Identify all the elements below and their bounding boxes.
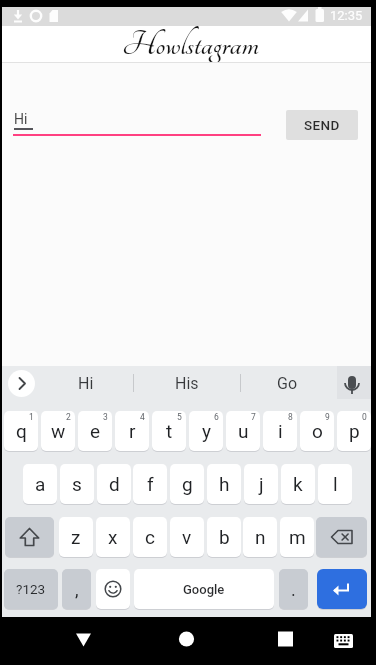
button[interactable]: His: [134, 369, 239, 397]
button[interactable]: [162, 620, 212, 660]
button[interactable]: z: [59, 517, 93, 557]
staticText: 9: [325, 412, 330, 422]
button[interactable]: o: [300, 411, 334, 451]
button[interactable]: v: [170, 517, 204, 557]
staticText: y: [202, 420, 211, 442]
staticText: 2: [66, 412, 71, 422]
button[interactable]: [5, 517, 54, 557]
staticText: 3: [103, 412, 108, 422]
staticText: 4: [140, 412, 145, 422]
button[interactable]: u: [226, 411, 260, 451]
staticText: 5: [177, 412, 182, 422]
staticText: w: [51, 420, 66, 442]
button[interactable]: w: [41, 411, 75, 451]
button[interactable]: s: [60, 464, 94, 504]
staticText: c: [145, 526, 155, 548]
staticText: ?123: [16, 581, 46, 597]
staticText: a: [35, 473, 46, 495]
button[interactable]: l: [318, 464, 352, 504]
staticText: o: [312, 420, 323, 442]
button[interactable]: f: [133, 464, 167, 504]
staticText: 8: [288, 412, 293, 422]
button[interactable]: c: [133, 517, 167, 557]
button[interactable]: b: [207, 517, 241, 557]
staticText: 7: [251, 412, 256, 422]
button[interactable]: y: [189, 411, 223, 451]
staticText: r: [129, 420, 136, 442]
button[interactable]: .: [279, 569, 308, 609]
staticText: Hi: [14, 111, 28, 127]
button[interactable]: m: [280, 517, 314, 557]
staticText: n: [255, 526, 266, 548]
button[interactable]: a: [23, 464, 57, 504]
button[interactable]: n: [243, 517, 277, 557]
staticText: s: [72, 473, 82, 495]
staticText: Google: [183, 582, 225, 597]
staticText: b: [219, 526, 230, 548]
staticText: .: [291, 579, 296, 600]
staticText: q: [16, 420, 27, 442]
staticText: Howlstagram: [122, 26, 259, 62]
staticText: v: [182, 526, 192, 548]
staticText: i: [278, 420, 283, 442]
button[interactable]: [258, 620, 308, 660]
staticText: h: [219, 473, 230, 495]
staticText: His: [175, 374, 199, 393]
button[interactable]: Google: [134, 569, 274, 609]
button[interactable]: [337, 366, 371, 399]
staticText: k: [293, 473, 303, 495]
staticText: m: [289, 526, 306, 548]
staticText: 0: [362, 412, 367, 422]
staticText: f: [147, 473, 154, 495]
button[interactable]: [325, 620, 370, 660]
staticText: t: [166, 420, 173, 442]
staticText: e: [90, 420, 101, 442]
staticText: Hi: [78, 374, 94, 393]
staticText: 6: [214, 412, 219, 422]
button[interactable]: Go: [240, 369, 335, 397]
button[interactable]: [60, 620, 110, 660]
button[interactable]: h: [207, 464, 241, 504]
button[interactable]: p: [337, 411, 371, 451]
staticText: x: [108, 526, 118, 548]
button[interactable]: j: [244, 464, 278, 504]
staticText: d: [109, 473, 120, 495]
staticText: 1: [29, 412, 34, 422]
button[interactable]: r: [115, 411, 149, 451]
button[interactable]: t: [152, 411, 186, 451]
button[interactable]: k: [281, 464, 315, 504]
button[interactable]: SEND: [286, 110, 358, 140]
button[interactable]: [316, 517, 367, 557]
button[interactable]: ?123: [4, 569, 58, 609]
staticText: ,: [75, 579, 79, 600]
button[interactable]: q: [4, 411, 38, 451]
button[interactable]: ,: [62, 569, 91, 609]
staticText: Go: [277, 374, 298, 393]
button[interactable]: i: [263, 411, 297, 451]
button[interactable]: Hi: [43, 369, 128, 397]
staticText: p: [349, 420, 360, 442]
staticText: u: [238, 420, 249, 442]
button[interactable]: e: [78, 411, 112, 451]
button[interactable]: [96, 569, 130, 609]
staticText: l: [333, 473, 338, 495]
button[interactable]: d: [97, 464, 131, 504]
button[interactable]: [8, 370, 35, 397]
staticText: SEND: [304, 117, 340, 133]
button[interactable]: x: [96, 517, 130, 557]
staticText: z: [71, 526, 81, 548]
staticText: g: [182, 473, 193, 495]
staticText: j: [259, 473, 264, 495]
button[interactable]: g: [170, 464, 204, 504]
button[interactable]: [317, 569, 367, 609]
staticText: 12:35: [330, 8, 363, 23]
